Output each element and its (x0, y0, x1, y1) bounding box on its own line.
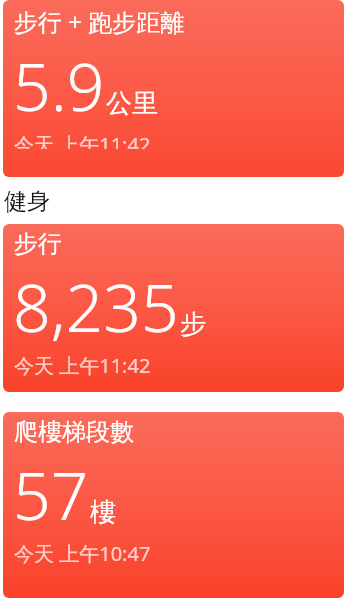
staticText: 5.9 (13, 40, 105, 130)
staticText: 爬樓梯段數 (14, 417, 134, 447)
staticText: 樓 (90, 496, 116, 529)
staticText: 今天 上午11:42 (14, 352, 151, 379)
button[interactable]: 步行 (3, 224, 344, 392)
staticText: 57 (13, 449, 89, 539)
staticText: 今天 上午10:47 (14, 540, 151, 567)
staticText: 步行 + 跑步距離 (14, 5, 185, 38)
staticText: 步行 (14, 229, 62, 259)
staticText: 今天 上午11:42 (14, 131, 151, 149)
staticText: 8,235 (13, 261, 179, 351)
staticText: 步 (180, 308, 206, 341)
staticText: 公里 (106, 87, 158, 120)
button[interactable]: 爬樓梯段數 (3, 412, 344, 598)
button[interactable]: 步行 + 跑步距離 (3, 0, 344, 177)
staticText: 健身 (4, 187, 50, 216)
